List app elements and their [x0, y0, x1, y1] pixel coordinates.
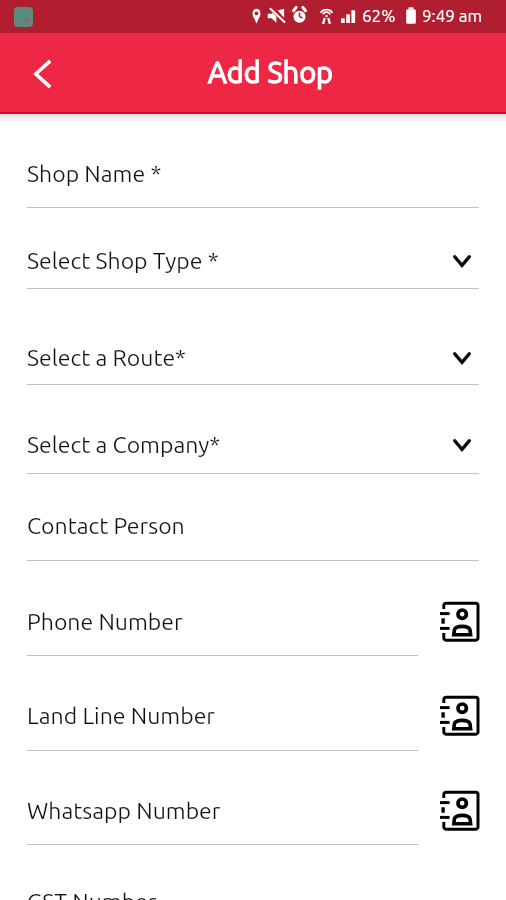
button[interactable]: Shop Name *	[0, 143, 506, 221]
button[interactable]: Whatsapp Number	[0, 780, 506, 859]
staticText: Contact Person	[27, 513, 185, 539]
button[interactable]: Back	[20, 51, 66, 97]
staticText: Land Line Number	[27, 703, 216, 729]
staticText: Select Shop Type *	[27, 248, 219, 274]
staticText: Select a Company*	[27, 432, 221, 458]
staticText: 62%	[362, 6, 396, 25]
staticText: Shop Name *	[27, 161, 162, 187]
button[interactable]: Contact Person	[0, 495, 506, 574]
staticText: Add Shop	[208, 56, 334, 89]
staticText: Phone Number	[27, 609, 183, 635]
staticText: GST Number	[27, 889, 157, 900]
button[interactable]: Select a Route*	[0, 327, 506, 399]
button[interactable]: Land Line Number	[0, 685, 506, 765]
button[interactable]: GST Number	[0, 871, 506, 900]
staticText: Select a Route*	[27, 345, 187, 371]
button[interactable]: Phone Number	[0, 591, 506, 670]
staticText: Whatsapp Number	[27, 798, 221, 824]
button[interactable]: Select Shop Type *	[0, 230, 506, 303]
staticText: 9:49 am	[422, 6, 483, 25]
button[interactable]: Select a Company*	[0, 414, 506, 487]
